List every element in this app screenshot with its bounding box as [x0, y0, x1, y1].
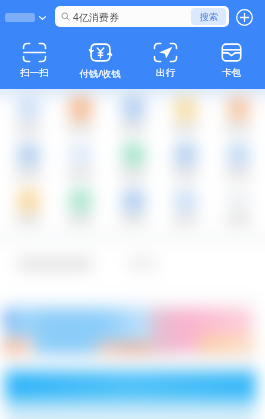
staticText: 4亿消费券 — [73, 10, 119, 24]
staticText: 搜索 — [200, 11, 218, 22]
staticText: 出行 — [156, 67, 175, 79]
button[interactable]: 付钱/收钱 — [69, 43, 131, 80]
button[interactable]: 搜索 — [191, 8, 226, 25]
button[interactable]: 卡包 — [200, 43, 262, 79]
button[interactable]: 扫一扫 — [3, 43, 65, 79]
button[interactable]: 出行 — [134, 43, 196, 79]
button[interactable]: Add — [231, 4, 257, 30]
staticText: 卡包 — [222, 67, 241, 79]
staticText: 扫一扫 — [20, 67, 49, 79]
button[interactable]: Location — [0, 4, 55, 30]
button[interactable]: 4亿消费券 — [55, 6, 229, 27]
staticText: 付钱/收钱 — [79, 67, 121, 80]
